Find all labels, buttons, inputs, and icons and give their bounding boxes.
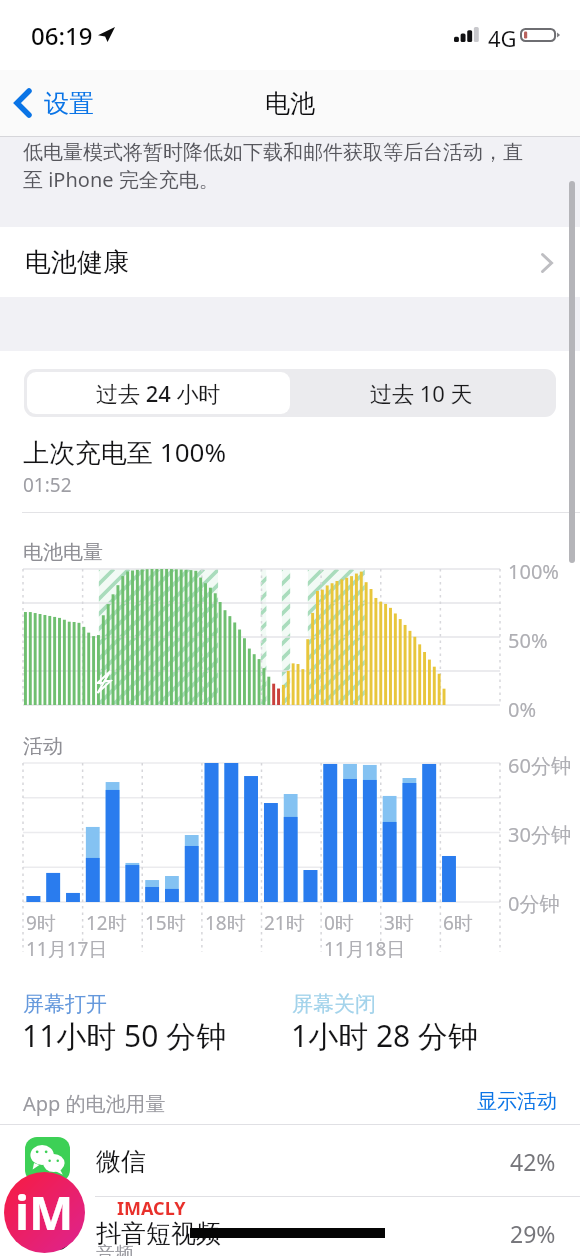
staticText: 0时	[324, 910, 354, 936]
staticText: 9时	[26, 910, 56, 936]
staticText: 1小时 28 分钟	[291, 1015, 479, 1056]
button[interactable]: 电池健康	[0, 228, 580, 297]
staticText: 屏幕关闭	[292, 991, 376, 1017]
staticText: 抖音短视频	[96, 1218, 221, 1249]
staticText: 06:19	[31, 19, 93, 52]
staticText: 21时	[264, 910, 305, 936]
staticText: 100%	[508, 558, 559, 585]
staticText: 50%	[508, 627, 548, 654]
staticText: 0分钟	[508, 890, 560, 917]
staticText: 屏幕打开	[23, 991, 107, 1017]
staticText: IMACLY	[117, 1196, 186, 1221]
button[interactable]: 微信	[0, 1125, 580, 1197]
staticText: 60分钟	[508, 752, 571, 779]
staticText: 29%	[510, 1218, 556, 1249]
staticText: 过去 10 天	[370, 378, 473, 408]
button[interactable]: 抖音短视频	[0, 1197, 580, 1256]
staticText: 4G	[488, 23, 517, 53]
staticText: 微信	[96, 1146, 146, 1177]
staticText: 上次充电至 100%	[23, 434, 226, 470]
button[interactable]: 过去 10 天	[290, 372, 553, 414]
staticText: 6时	[443, 910, 473, 936]
staticText: 18时	[205, 910, 246, 936]
staticText: 12时	[86, 910, 127, 936]
staticText: 0%	[508, 696, 537, 723]
button[interactable]: 过去 24 小时	[27, 372, 290, 414]
staticText: 低电量模式将暂时降低如下载和邮件获取等后台活动，直 至 iPhone 完全充电。	[23, 140, 523, 193]
staticText: 显示活动	[477, 1089, 557, 1114]
staticText: 设置	[44, 88, 94, 119]
staticText: 11月17日	[26, 936, 108, 962]
staticText: iM	[15, 1180, 74, 1244]
staticText: 活动	[23, 734, 63, 759]
staticText: App 的电池用量	[23, 1090, 166, 1117]
staticText: 电池健康	[25, 246, 129, 279]
staticText: 电池电量	[23, 540, 103, 565]
staticText: 15时	[145, 910, 186, 936]
staticText: 音频	[96, 1242, 134, 1256]
staticText: 电池	[265, 88, 315, 119]
staticText: 30分钟	[508, 821, 571, 848]
button[interactable]: 设置	[4, 70, 164, 136]
staticText: 01:52	[23, 472, 72, 498]
button[interactable]: 显示活动	[430, 1082, 557, 1120]
staticText: 42%	[510, 1146, 556, 1177]
staticText: 11小时 50 分钟	[22, 1015, 227, 1056]
staticText: 3时	[384, 910, 414, 936]
staticText: 过去 24 小时	[96, 378, 221, 408]
staticText: 11月18日	[324, 936, 406, 962]
